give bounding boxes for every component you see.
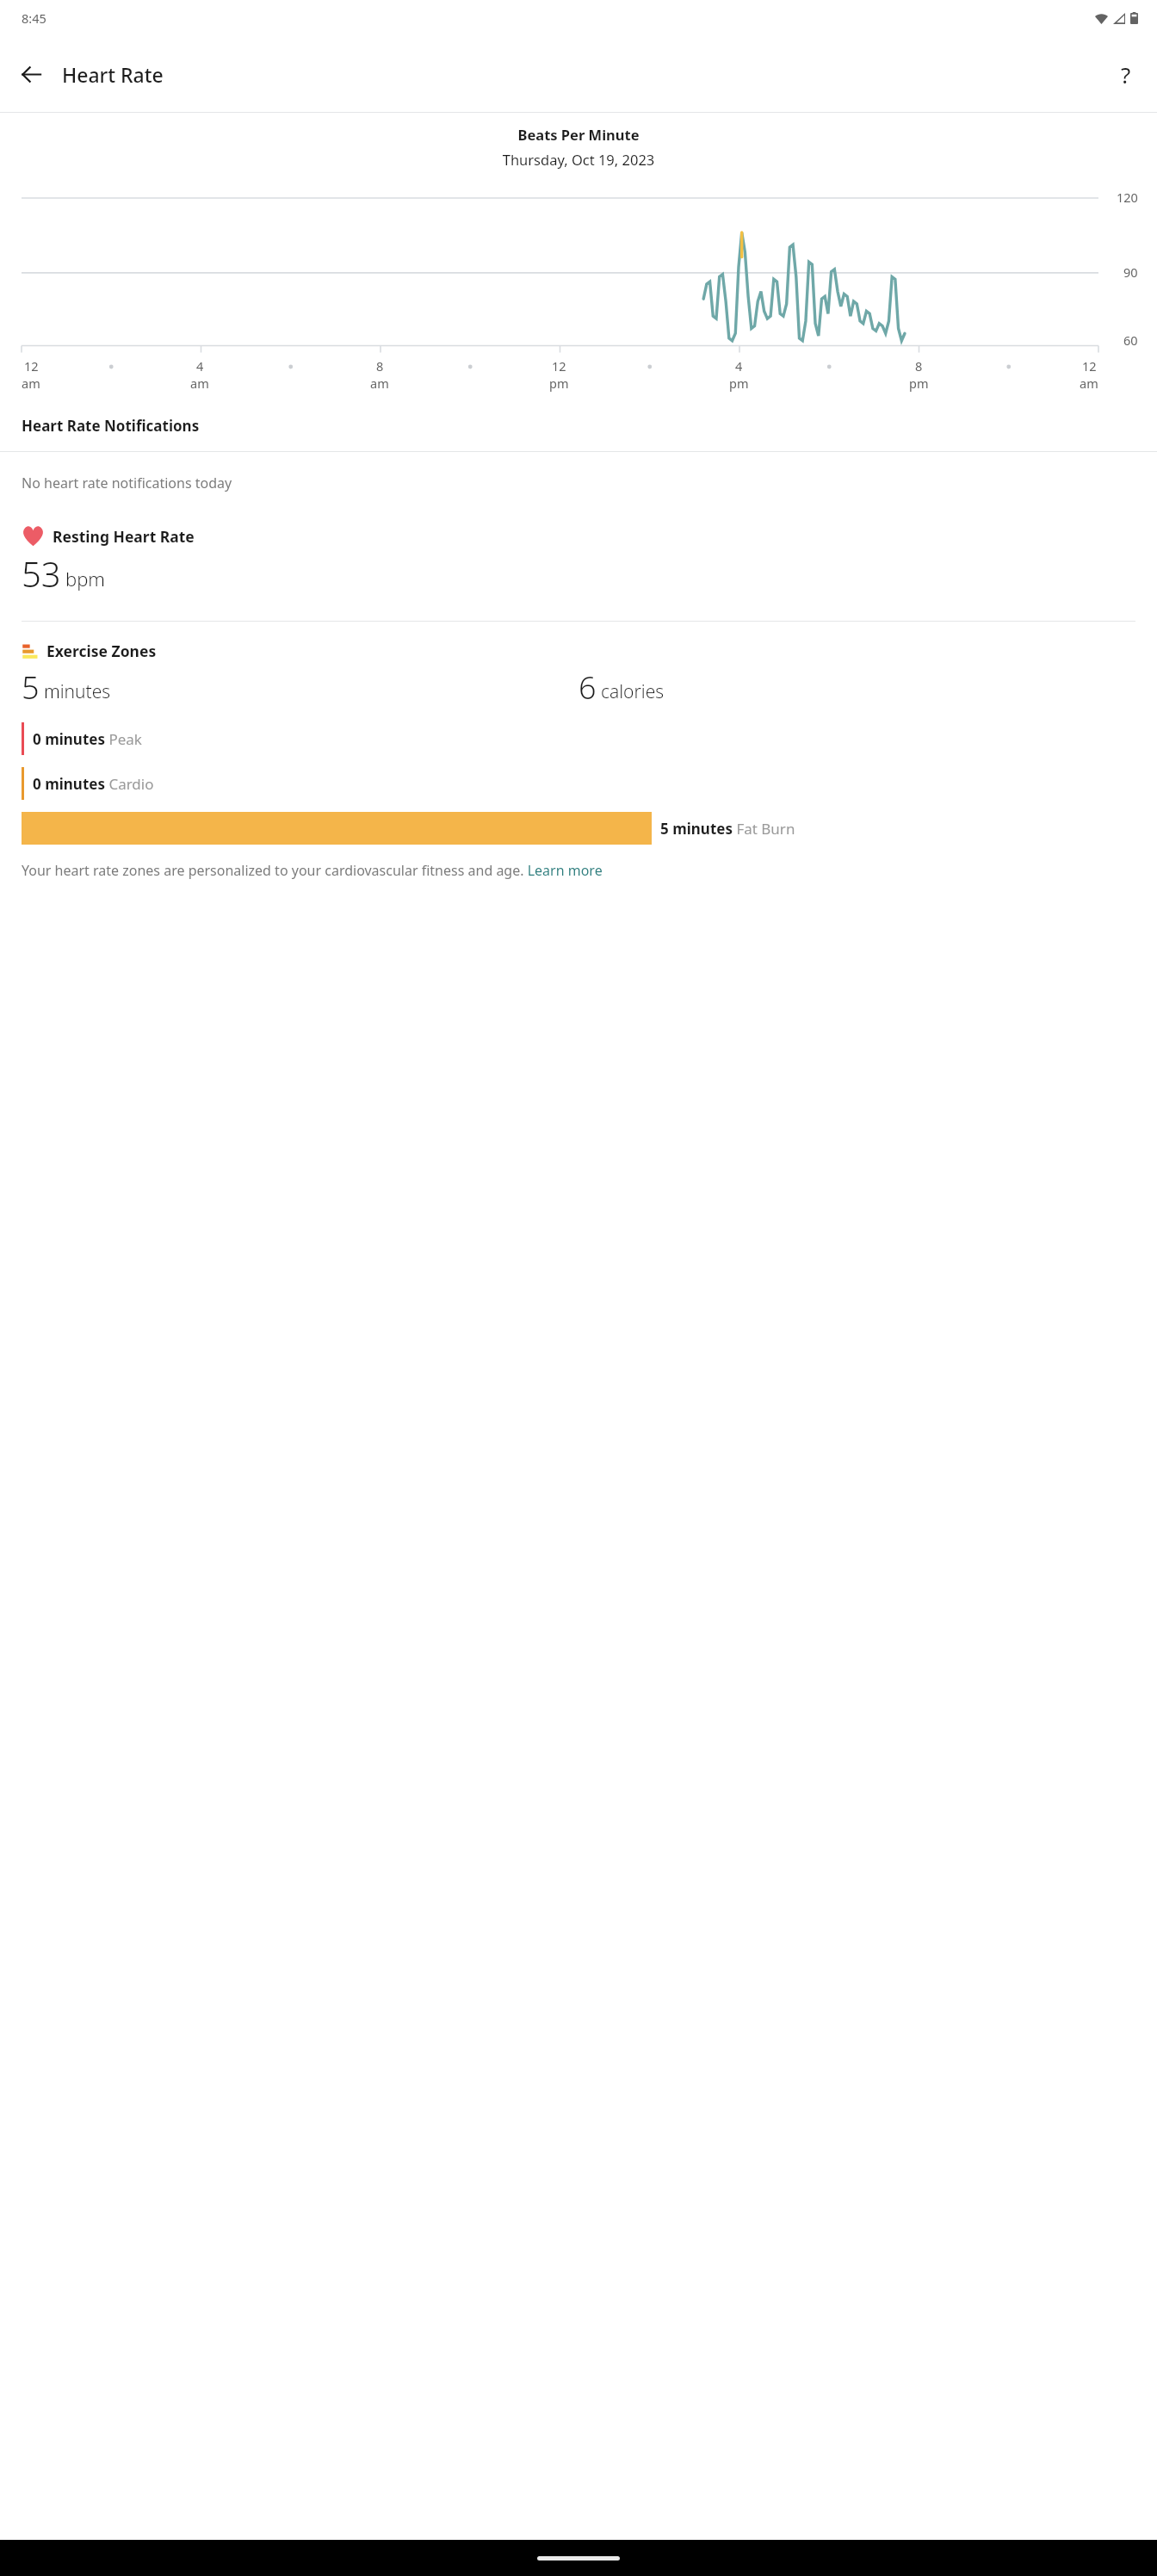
staticText: minutes	[44, 679, 111, 704]
staticText: 12	[1082, 357, 1097, 375]
staticText: Exercise Zones	[46, 641, 157, 661]
button[interactable]: Back	[9, 52, 53, 96]
staticText: 120	[1117, 189, 1138, 206]
staticText: am	[22, 375, 40, 392]
staticText: Heart Rate	[62, 61, 164, 88]
staticText: 60	[1123, 331, 1138, 349]
staticText: 8:45	[22, 9, 46, 27]
staticText: Thursday, Oct 19, 2023	[0, 150, 1157, 169]
staticText: 5 minutes Fat Burn	[660, 819, 795, 839]
staticText: bpm	[65, 566, 106, 591]
staticText: 0 minutes Peak	[33, 729, 142, 749]
staticText: 90	[1123, 263, 1138, 281]
staticText: 5	[22, 666, 40, 709]
staticText: 6	[578, 666, 597, 709]
staticText: 4	[735, 357, 743, 375]
staticText: 0 minutes Cardio	[33, 774, 154, 794]
staticText: 8	[915, 357, 923, 375]
staticText: ?	[1121, 59, 1131, 90]
staticText: No heart rate notifications today	[22, 474, 232, 492]
staticText: Your heart rate zones are personalized t…	[22, 861, 603, 880]
staticText: 12	[24, 357, 39, 375]
staticText: 53	[22, 550, 61, 597]
staticText: Resting Heart Rate	[53, 526, 195, 547]
button[interactable]: 0 minutes Cardio	[0, 767, 1157, 800]
button[interactable]: Your heart rate zones are personalized t…	[22, 861, 603, 880]
staticText: pm	[909, 375, 929, 392]
staticText: pm	[729, 375, 749, 392]
staticText: am	[370, 375, 389, 392]
staticText: Beats Per Minute	[0, 125, 1157, 144]
staticText: calories	[601, 679, 665, 704]
staticText: am	[190, 375, 209, 392]
staticText: 4	[196, 357, 204, 375]
staticText: 12	[552, 357, 566, 375]
staticText: pm	[549, 375, 569, 392]
button[interactable]: 0 minutes Peak	[0, 722, 1157, 755]
staticText: Heart Rate Notifications	[22, 416, 200, 436]
staticText: 8	[376, 357, 384, 375]
button[interactable]: 5 minutes Fat Burn	[0, 812, 1157, 845]
staticText: am	[1080, 375, 1098, 392]
button[interactable]: Help	[1104, 52, 1148, 96]
